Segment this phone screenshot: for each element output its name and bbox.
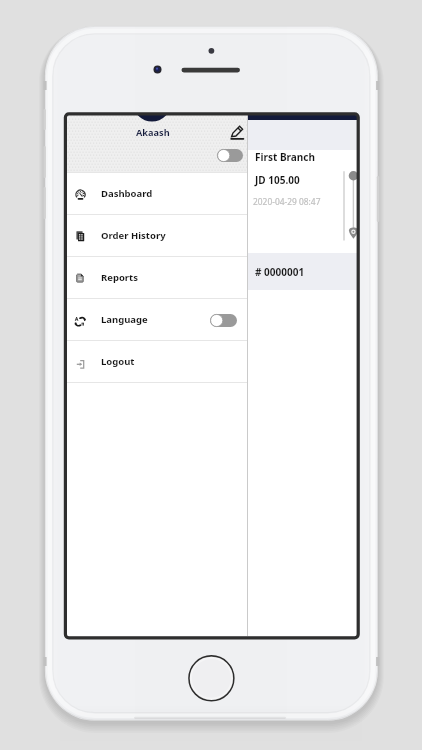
button[interactable]: Availability toggle: [217, 149, 243, 162]
staticText: JD 105.00: [255, 173, 300, 187]
staticText: Order History: [101, 229, 166, 242]
staticText: 2020-04-29 08:47: [253, 196, 321, 207]
button[interactable]: Logout: [67, 341, 247, 383]
staticText: Language: [101, 313, 148, 326]
staticText: Dashboard: [101, 187, 153, 200]
staticText: Akaash: [136, 126, 170, 139]
button[interactable]: # 0000001: [248, 253, 357, 290]
staticText: Reports: [101, 271, 138, 284]
staticText: Logout: [101, 355, 135, 368]
button[interactable]: Dashboard: [67, 173, 247, 215]
button[interactable]: Language: [67, 299, 247, 341]
button[interactable]: Order History: [67, 215, 247, 257]
staticText: First Branch: [255, 150, 315, 164]
staticText: # 0000001: [255, 265, 305, 279]
button[interactable]: Edit profile: [230, 125, 245, 140]
button[interactable]: Reports: [67, 257, 247, 299]
